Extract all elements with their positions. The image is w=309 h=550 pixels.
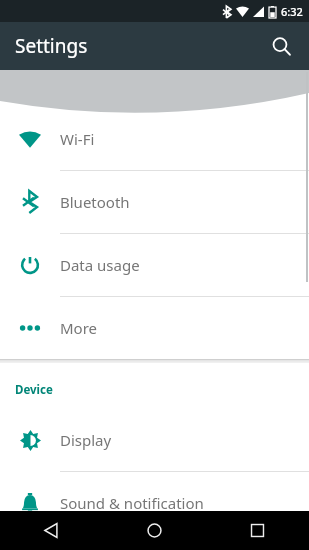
button[interactable]: Wi-Fi bbox=[0, 108, 309, 170]
staticText: Sound & notification bbox=[60, 493, 204, 513]
staticText: Data usage bbox=[60, 255, 140, 275]
staticText: Wi-Fi bbox=[60, 129, 95, 149]
button[interactable]: Back bbox=[0, 511, 103, 550]
button[interactable]: Search bbox=[259, 24, 303, 68]
staticText: Bluetooth bbox=[60, 192, 130, 212]
button[interactable]: Sound & notification bbox=[0, 472, 309, 534]
button[interactable]: More bbox=[0, 297, 309, 359]
button[interactable]: Display bbox=[0, 409, 309, 471]
staticText: Device bbox=[15, 382, 53, 398]
staticText: Settings bbox=[15, 33, 88, 59]
button[interactable]: Home bbox=[103, 511, 206, 550]
button[interactable]: Bluetooth bbox=[0, 171, 309, 233]
button[interactable]: Data usage bbox=[0, 234, 309, 296]
staticText: 6:32 bbox=[281, 4, 303, 19]
staticText: More bbox=[60, 318, 98, 338]
button[interactable]: Recent apps bbox=[206, 511, 309, 550]
staticText: Display bbox=[60, 430, 112, 450]
